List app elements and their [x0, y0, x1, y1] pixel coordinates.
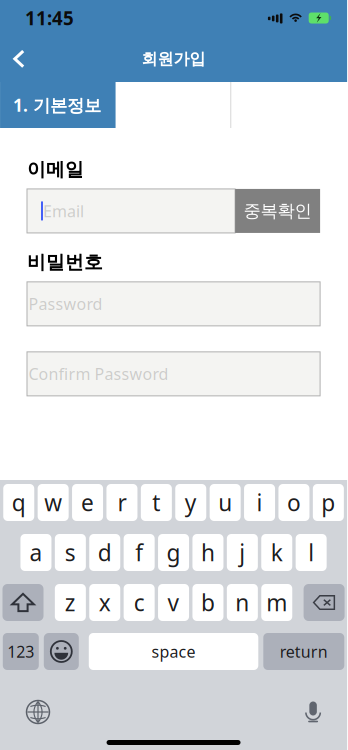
- staticText: h: [201, 537, 215, 567]
- button[interactable]: j: [227, 534, 258, 571]
- staticText: Email: [43, 200, 84, 221]
- button[interactable]: x: [89, 584, 120, 621]
- button[interactable]: b: [192, 584, 223, 621]
- staticText: j: [239, 537, 245, 567]
- button[interactable]: t: [141, 484, 172, 521]
- button[interactable]: l: [296, 534, 327, 571]
- button[interactable]: return: [263, 633, 344, 670]
- staticText: r: [117, 487, 126, 517]
- button[interactable]: 1. 기본정보: [0, 82, 116, 128]
- button[interactable]: k: [261, 534, 292, 571]
- button[interactable]: 123: [3, 633, 39, 670]
- staticText: space: [152, 641, 196, 662]
- staticText: b: [201, 587, 215, 617]
- staticText: a: [29, 537, 42, 567]
- staticText: s: [65, 537, 76, 567]
- staticText: 회원가입: [142, 49, 206, 69]
- staticText: y: [185, 487, 197, 517]
- button[interactable]: w: [38, 484, 69, 521]
- button[interactable]: n: [227, 584, 258, 621]
- staticText: d: [98, 537, 112, 567]
- button[interactable]: Emoji: [44, 633, 79, 670]
- staticText: return: [280, 641, 328, 662]
- button[interactable]: Dictate: [291, 692, 335, 732]
- button[interactable]: q: [3, 484, 34, 521]
- staticText: Confirm Password: [28, 363, 168, 384]
- staticText: 중복확인: [244, 200, 312, 222]
- button[interactable]: 중복확인: [235, 189, 320, 233]
- button[interactable]: space: [89, 633, 258, 670]
- button[interactable]: p: [313, 484, 344, 521]
- button[interactable]: d: [89, 534, 120, 571]
- staticText: l: [308, 537, 314, 567]
- button[interactable]: r: [106, 484, 137, 521]
- staticText: i: [257, 487, 263, 517]
- staticText: 11:45: [25, 6, 74, 30]
- staticText: 이메일: [27, 158, 84, 181]
- button[interactable]: o: [278, 484, 309, 521]
- button[interactable]: u: [210, 484, 241, 521]
- staticText: n: [235, 587, 249, 617]
- staticText: 1. 기본정보: [13, 93, 101, 116]
- staticText: o: [287, 487, 301, 517]
- staticText: x: [99, 587, 111, 617]
- button[interactable]: Back: [0, 36, 38, 82]
- staticText: w: [44, 487, 62, 517]
- button[interactable]: m: [261, 584, 292, 621]
- staticText: q: [12, 487, 26, 517]
- staticText: u: [218, 487, 232, 517]
- staticText: Password: [28, 293, 102, 314]
- staticText: c: [134, 587, 145, 617]
- staticText: z: [65, 587, 76, 617]
- button[interactable]: Delete: [304, 584, 345, 621]
- staticText: g: [167, 537, 181, 567]
- staticText: v: [168, 587, 180, 617]
- staticText: p: [321, 487, 335, 517]
- button[interactable]: Change keyboard: [16, 692, 60, 732]
- button[interactable]: y: [175, 484, 206, 521]
- button[interactable]: i: [244, 484, 275, 521]
- button[interactable]: s: [55, 534, 86, 571]
- button[interactable]: v: [158, 584, 189, 621]
- staticText: t: [152, 487, 160, 517]
- button[interactable]: a: [20, 534, 51, 571]
- button[interactable]: z: [55, 584, 86, 621]
- button[interactable]: h: [192, 534, 223, 571]
- button[interactable]: Shift: [2, 584, 43, 621]
- button[interactable]: c: [124, 584, 155, 621]
- button[interactable]: g: [158, 534, 189, 571]
- staticText: 비밀번호: [27, 251, 103, 274]
- staticText: k: [271, 537, 283, 567]
- staticText: m: [266, 587, 287, 617]
- staticText: e: [81, 487, 94, 517]
- staticText: 123: [7, 641, 34, 662]
- button[interactable]: f: [124, 534, 155, 571]
- staticText: f: [135, 537, 143, 567]
- button[interactable]: e: [72, 484, 103, 521]
